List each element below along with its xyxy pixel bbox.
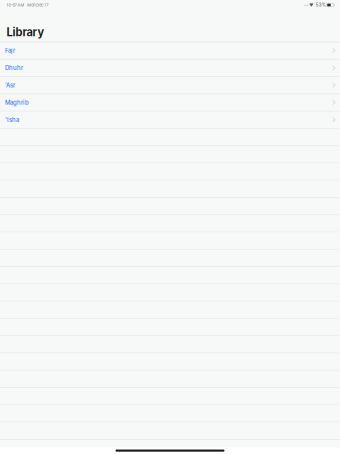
staticText: 10:57 AM [6, 2, 24, 7]
staticText: Library [6, 26, 44, 39]
button[interactable]: Fajr [0, 42, 340, 60]
staticText: Dhuhr [5, 64, 23, 72]
button[interactable]: 'Asr [0, 77, 340, 94]
staticText: Mon Dec 17 [27, 2, 48, 7]
staticText: Fajr [5, 47, 15, 54]
staticText: 'Isha [5, 116, 19, 123]
staticText: 'Asr [5, 82, 15, 89]
button[interactable]: 'Isha [0, 111, 340, 129]
button[interactable]: Maghrib [0, 94, 340, 111]
button[interactable]: Dhuhr [0, 60, 340, 77]
staticText: 53% [316, 2, 326, 8]
staticText: Maghrib [5, 99, 29, 106]
